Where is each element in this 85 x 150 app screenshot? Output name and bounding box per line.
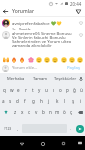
button[interactable]: Paylaş bbox=[66, 64, 82, 72]
button[interactable]: Share bbox=[75, 8, 82, 15]
button[interactable]: Send bbox=[76, 125, 84, 133]
staticText: Paylaş bbox=[67, 65, 81, 71]
button[interactable]: Home bbox=[37, 138, 48, 149]
button[interactable]: . bbox=[67, 124, 75, 133]
button[interactable]: k bbox=[53, 95, 61, 106]
staticText: ü bbox=[80, 87, 83, 93]
staticText: x bbox=[21, 109, 24, 115]
button[interactable]: Keyboard bbox=[77, 140, 83, 146]
button[interactable]: q bbox=[0, 84, 8, 95]
staticText: f bbox=[24, 98, 26, 104]
button[interactable]: v bbox=[33, 106, 40, 118]
staticText: s bbox=[9, 98, 12, 104]
button[interactable]: t bbox=[29, 84, 36, 95]
staticText: q bbox=[3, 87, 6, 93]
staticText: j bbox=[48, 98, 50, 104]
staticText: ö bbox=[63, 109, 66, 115]
button[interactable]: j bbox=[45, 95, 53, 106]
button[interactable]: Blossom bbox=[27, 56, 34, 63]
staticText: t bbox=[32, 87, 34, 93]
button[interactable]: z bbox=[11, 106, 19, 118]
button[interactable]: Wow bbox=[43, 56, 50, 63]
button[interactable]: Teşekkürler bbox=[52, 76, 78, 82]
button[interactable]: Back bbox=[16, 138, 27, 149]
button[interactable]: c bbox=[26, 106, 33, 118]
button[interactable]: Merhaba bbox=[4, 76, 28, 82]
button[interactable]: i bbox=[77, 95, 85, 106]
button[interactable]: Like bbox=[77, 19, 84, 26]
staticText: . bbox=[70, 126, 72, 132]
button[interactable]: n bbox=[47, 106, 54, 118]
staticText: a bbox=[2, 98, 5, 104]
button[interactable]: l bbox=[61, 95, 69, 106]
button[interactable]: u bbox=[43, 84, 50, 95]
button[interactable]: ?123 bbox=[1, 124, 14, 133]
staticText: c bbox=[28, 109, 31, 115]
staticText: 3s bbox=[12, 27, 16, 30]
staticText: Yorumlar bbox=[12, 8, 35, 15]
staticText: Teşekkürler bbox=[54, 76, 77, 82]
button[interactable]: p bbox=[64, 84, 71, 95]
staticText: e bbox=[17, 87, 20, 93]
button[interactable]: ç bbox=[68, 106, 75, 118]
button[interactable]: o bbox=[57, 84, 64, 95]
button[interactable]: Sad bbox=[51, 56, 58, 63]
staticText: y bbox=[38, 87, 41, 93]
staticText: ı bbox=[53, 87, 55, 93]
staticText: ş bbox=[72, 98, 75, 104]
staticText: ç bbox=[70, 109, 73, 115]
button[interactable]: y bbox=[36, 84, 43, 95]
button[interactable]: Back bbox=[2, 8, 9, 15]
button[interactable]: e bbox=[15, 84, 22, 95]
staticText: h bbox=[40, 98, 43, 104]
staticText: Yorum ekle... bbox=[12, 65, 38, 71]
button[interactable]: Tamam bbox=[28, 76, 52, 82]
staticText: r bbox=[25, 87, 27, 93]
button[interactable]: Joy bbox=[35, 56, 42, 63]
button[interactable]: ı bbox=[50, 84, 57, 95]
staticText: n bbox=[49, 109, 52, 115]
button[interactable]: d bbox=[14, 95, 21, 106]
button[interactable]: g bbox=[29, 95, 37, 106]
button[interactable]: w bbox=[8, 84, 15, 95]
button[interactable]: h bbox=[37, 95, 45, 106]
staticText: ?123 bbox=[4, 126, 12, 131]
button[interactable]: ğ bbox=[71, 84, 78, 95]
button[interactable]: , bbox=[14, 124, 22, 133]
button[interactable]: Fire bbox=[10, 56, 17, 63]
button[interactable]: x bbox=[19, 106, 26, 118]
button[interactable]: s bbox=[7, 95, 14, 106]
button[interactable]: Raised hands bbox=[2, 56, 9, 63]
button[interactable]: ü bbox=[78, 84, 85, 95]
button[interactable]: ş bbox=[69, 95, 77, 106]
staticText: v bbox=[35, 109, 38, 115]
button[interactable]: Grin bbox=[76, 56, 83, 63]
staticText: ğ bbox=[73, 87, 76, 93]
button[interactable]: Shift bbox=[0, 106, 11, 118]
button[interactable]: m bbox=[54, 106, 61, 118]
staticText: m bbox=[55, 109, 60, 115]
staticText: z bbox=[14, 109, 17, 115]
button[interactable]: a bbox=[0, 95, 7, 106]
button[interactable]: Backspace bbox=[75, 106, 85, 118]
staticText: Tamam bbox=[33, 76, 48, 82]
button[interactable]: Heart eyes bbox=[60, 56, 67, 63]
button[interactable]: Recents bbox=[58, 138, 69, 149]
staticText: avniprefenfabahce 💚💛 bbox=[12, 20, 62, 26]
staticText: w bbox=[10, 87, 14, 93]
button[interactable]: b bbox=[40, 106, 47, 118]
staticText: b bbox=[42, 109, 45, 115]
staticText: l bbox=[64, 98, 66, 104]
staticText: d bbox=[16, 98, 19, 104]
button[interactable]: Fire bbox=[18, 56, 25, 63]
staticText: , bbox=[17, 126, 19, 132]
button[interactable]: Smile bbox=[68, 56, 75, 63]
button[interactable]: Like bbox=[77, 31, 84, 38]
button[interactable]: Voice input bbox=[78, 76, 83, 81]
staticText: 20:44 bbox=[70, 1, 82, 7]
staticText: p bbox=[66, 87, 69, 93]
button[interactable]: ö bbox=[61, 106, 68, 118]
button[interactable]: f bbox=[21, 95, 29, 106]
button[interactable]: r bbox=[22, 84, 29, 95]
